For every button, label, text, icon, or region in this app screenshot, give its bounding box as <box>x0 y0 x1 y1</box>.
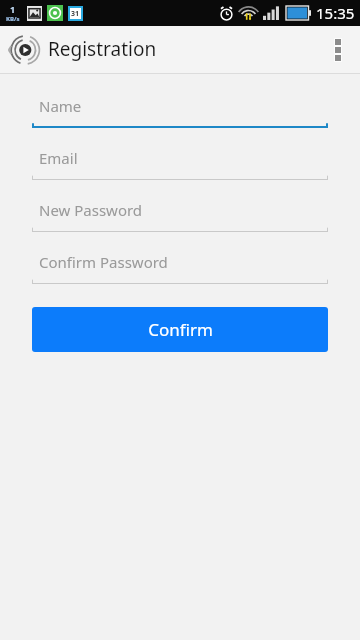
button[interactable]: Confirm Password <box>32 252 328 284</box>
button[interactable]: Name <box>32 96 328 128</box>
staticText: Registration <box>48 36 157 62</box>
button[interactable]: New Password <box>32 200 328 232</box>
button[interactable]: Email <box>32 148 328 180</box>
staticText: Confirm <box>148 318 213 341</box>
staticText: 15:35 <box>316 3 355 23</box>
button[interactable]: More options <box>316 28 360 72</box>
staticText: Name <box>39 96 82 116</box>
button[interactable]: Navigate up <box>2 28 46 72</box>
staticText: 31 <box>71 9 80 19</box>
staticText: Confirm Password <box>39 252 168 272</box>
staticText: Email <box>39 148 78 168</box>
staticText: KB/s <box>6 15 20 23</box>
staticText: New Password <box>39 200 143 220</box>
button[interactable]: Confirm <box>32 307 328 352</box>
staticText: 1 <box>10 3 16 15</box>
